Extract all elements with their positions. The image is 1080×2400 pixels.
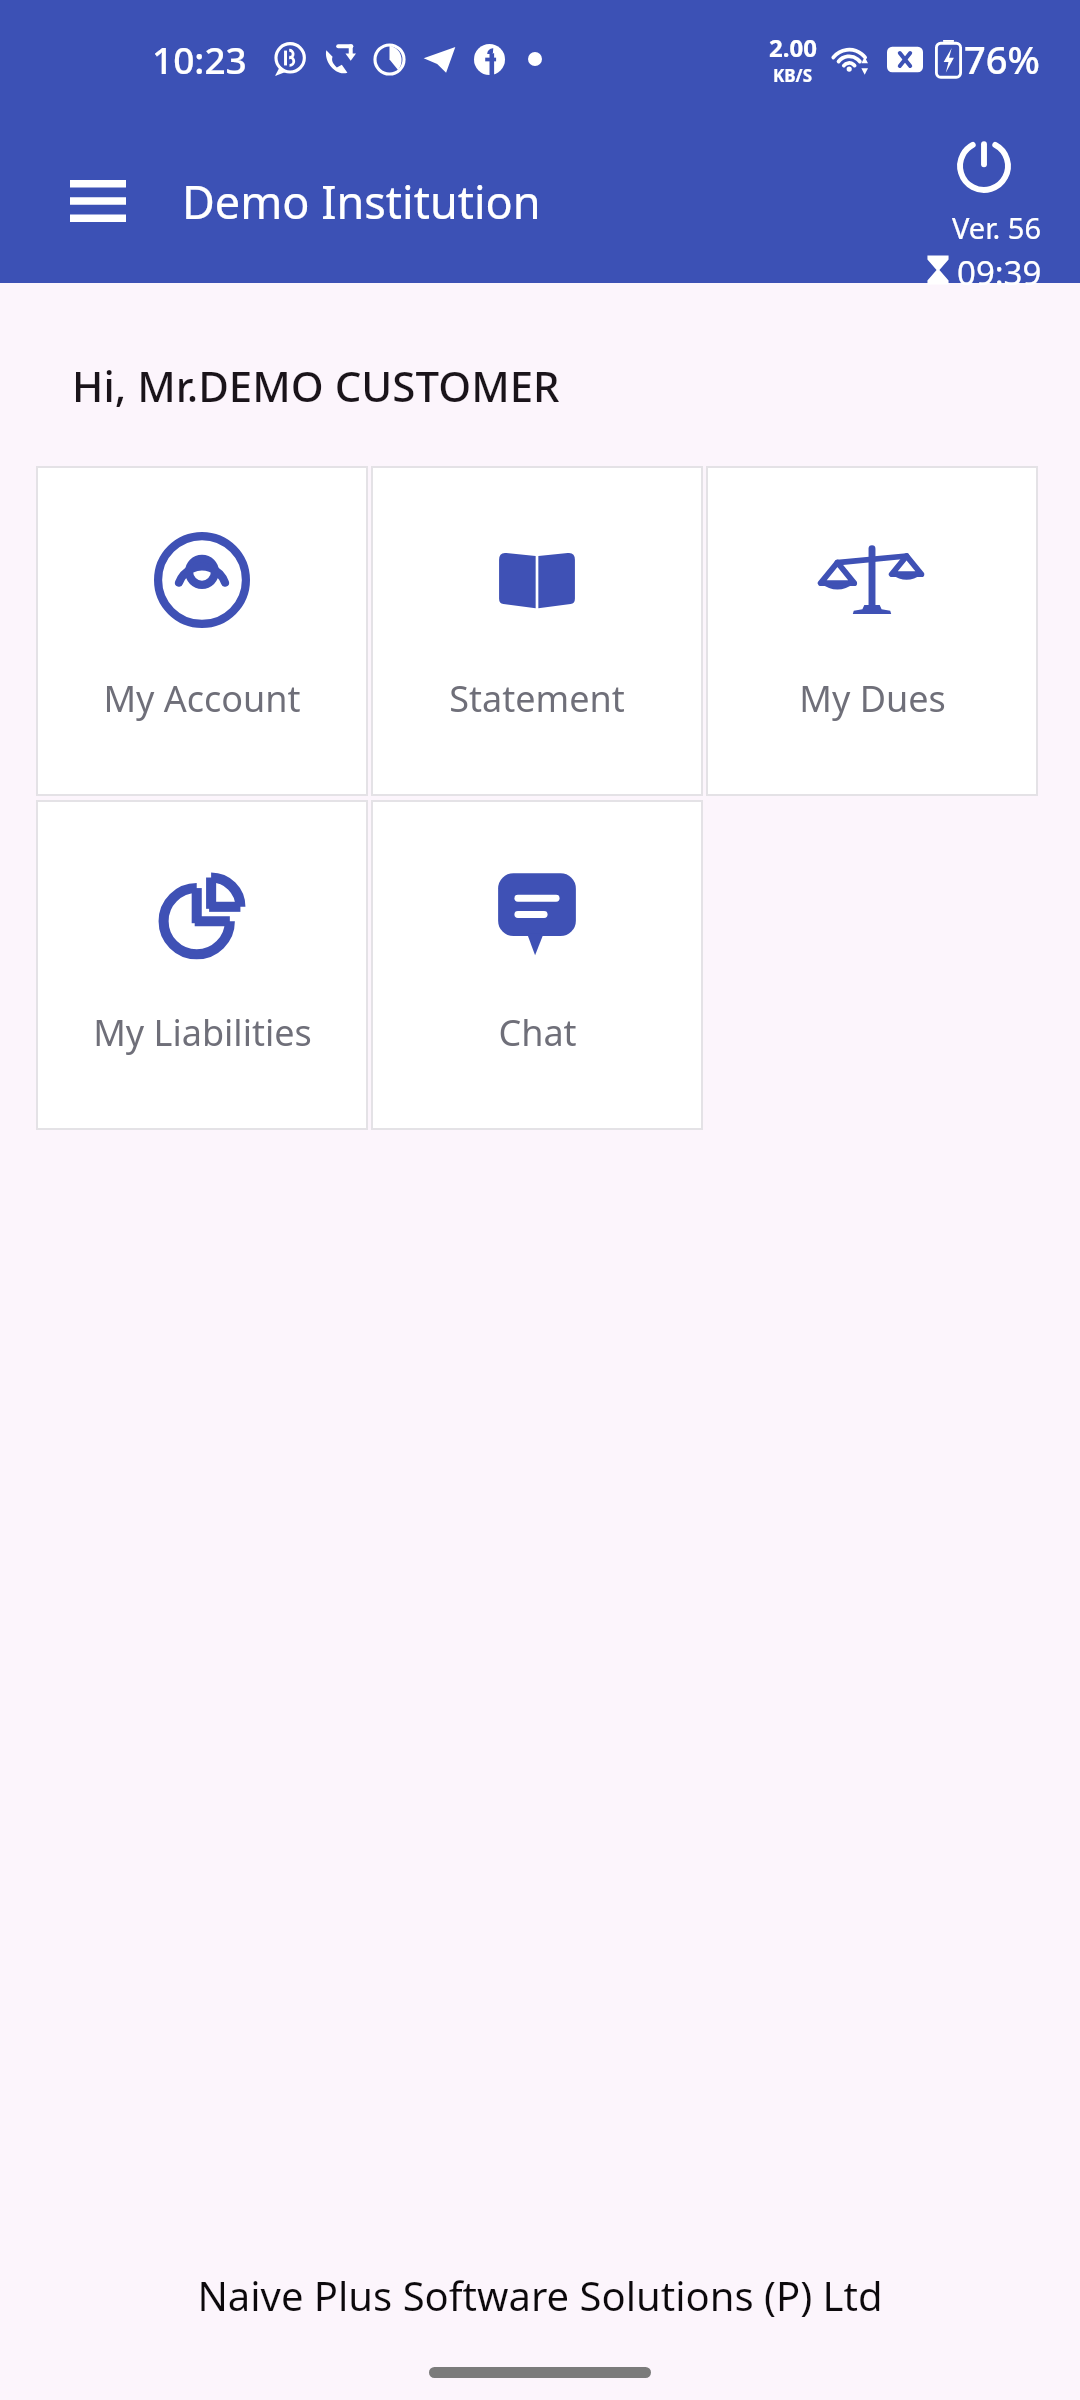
staticText: Chat: [498, 1008, 577, 1057]
button[interactable]: My Liabilities: [38, 802, 366, 1128]
staticText: Statement: [449, 674, 625, 723]
staticText: My Liabilities: [93, 1008, 312, 1057]
button[interactable]: Statement: [373, 468, 701, 794]
staticText: Naive Plus Software Solutions (P) Ltd: [0, 2268, 1080, 2322]
staticText: My Dues: [799, 674, 946, 723]
staticText: 10:23: [152, 34, 247, 84]
staticText: Hi, Mr.DEMO CUSTOMER: [72, 357, 560, 414]
button[interactable]: My Dues: [708, 468, 1036, 794]
staticText: 09:39: [957, 250, 1042, 289]
staticText: 2.00: [769, 31, 817, 64]
button[interactable]: My Account: [38, 468, 366, 794]
button[interactable]: Open navigation menu: [46, 149, 150, 253]
staticText: KB/S: [773, 64, 813, 87]
button[interactable]: Logout: [942, 124, 1026, 208]
button[interactable]: Chat: [373, 802, 701, 1128]
staticText: Ver. 56: [952, 208, 1042, 247]
staticText: My Account: [103, 674, 301, 723]
staticText: Demo Institution: [182, 171, 541, 232]
staticText: 76%: [964, 33, 1040, 85]
